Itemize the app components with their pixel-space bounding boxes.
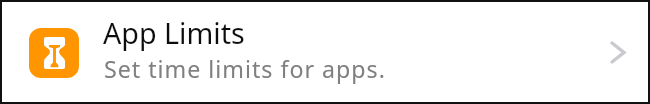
button[interactable]: App Limits bbox=[0, 0, 650, 104]
staticText: App Limits bbox=[103, 13, 245, 52]
staticText: Set time limits for apps. bbox=[104, 53, 386, 85]
other: Open App Limits bbox=[598, 0, 638, 104]
